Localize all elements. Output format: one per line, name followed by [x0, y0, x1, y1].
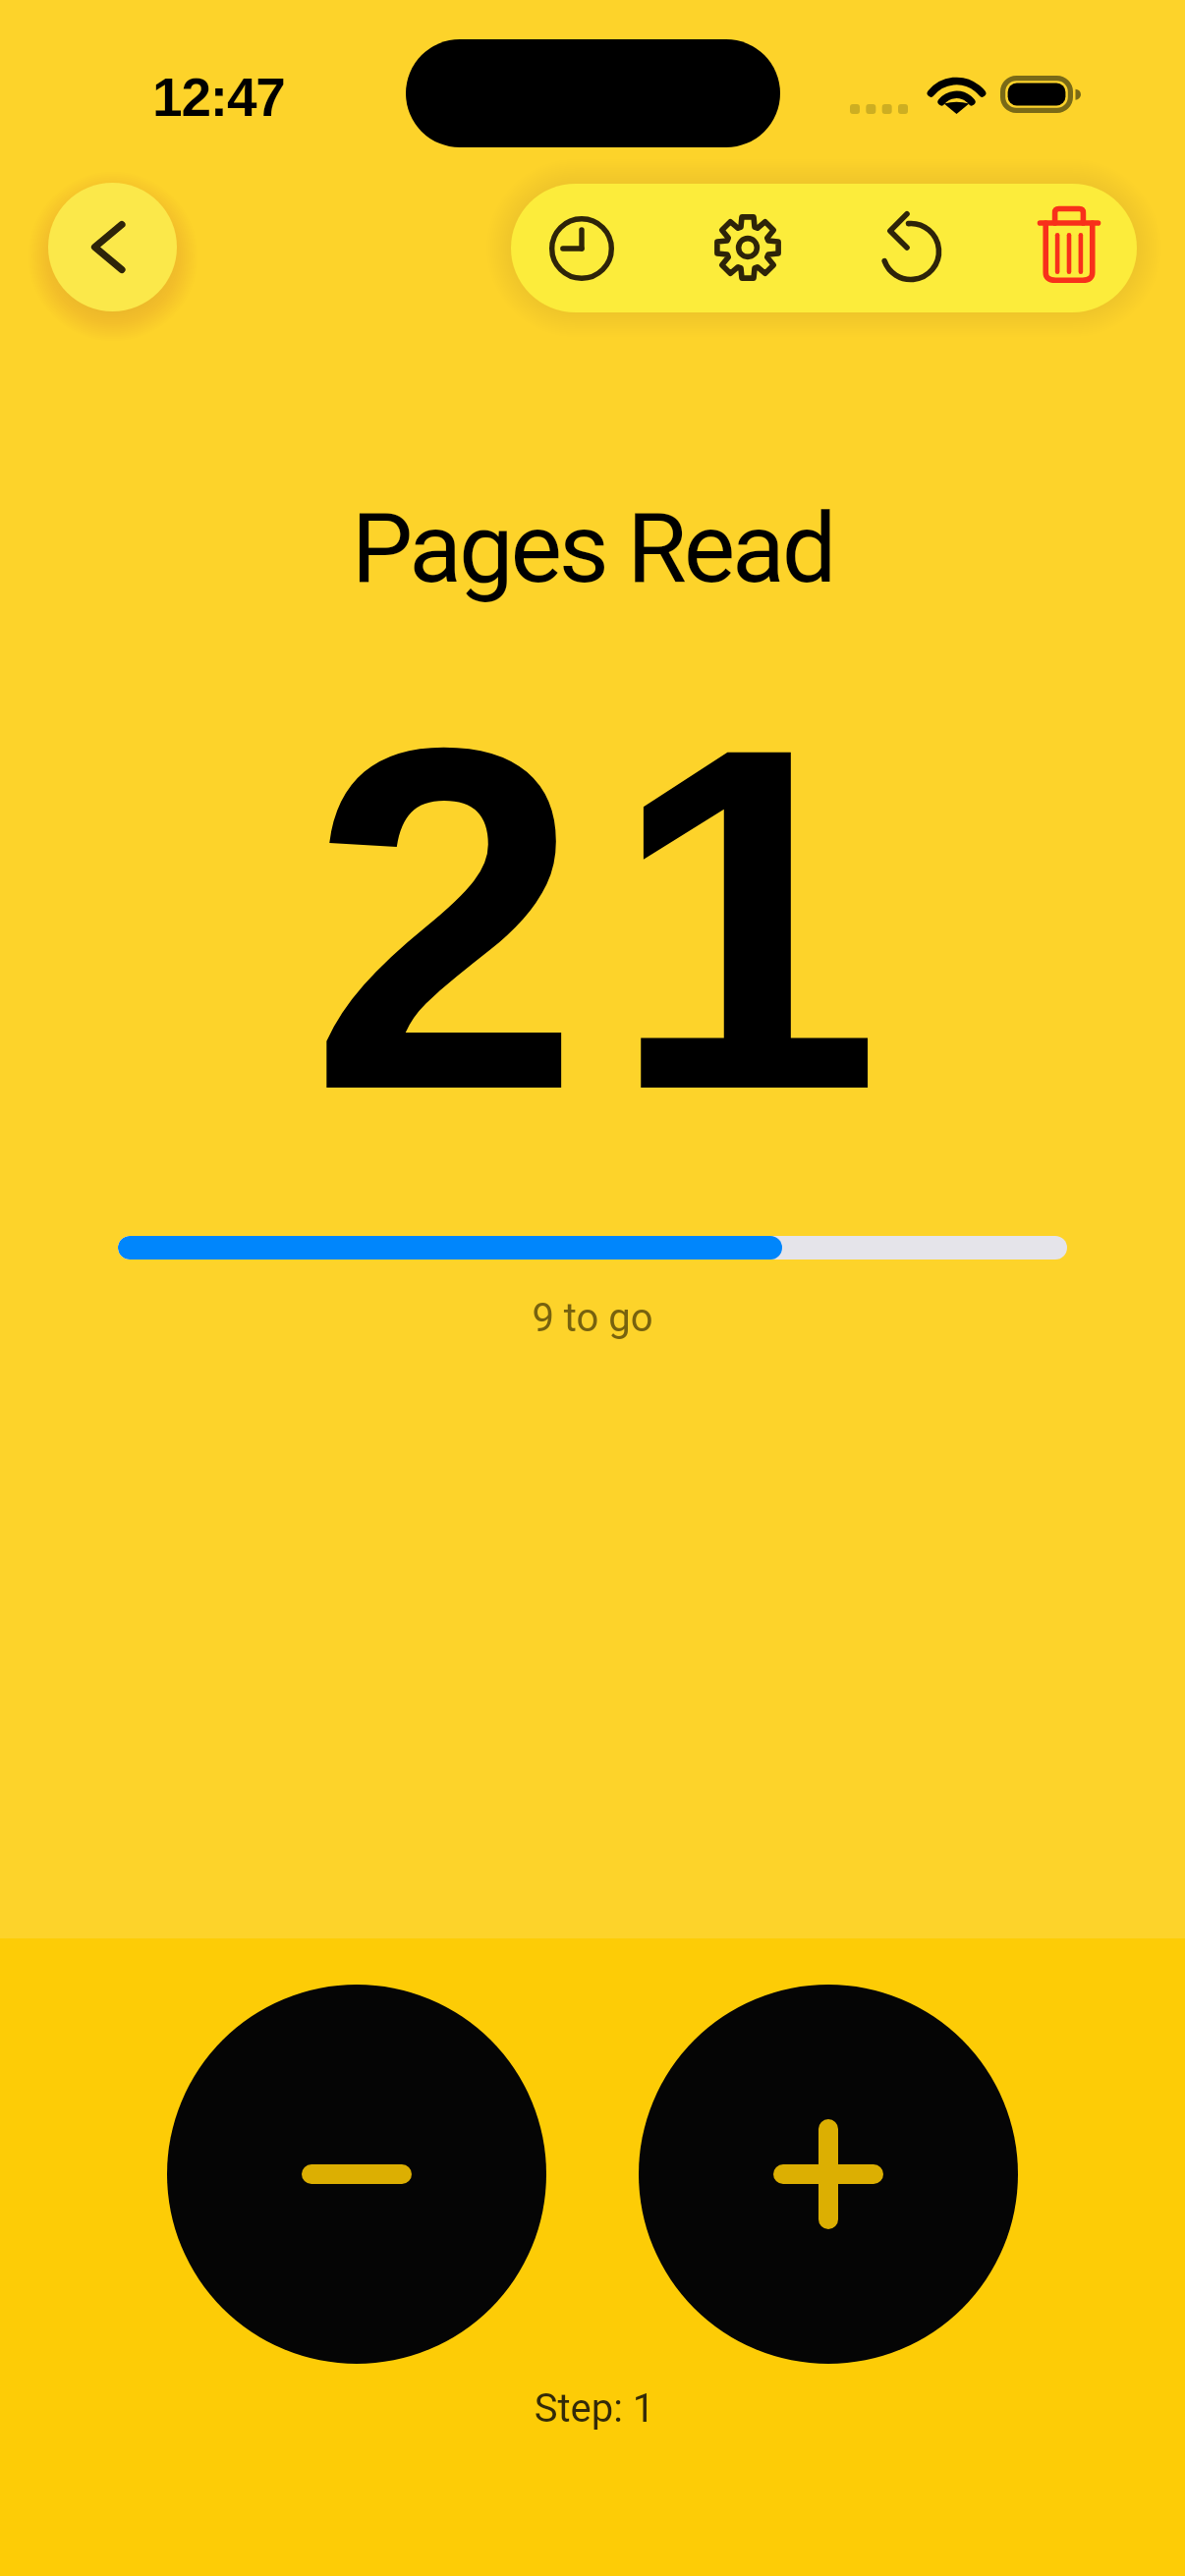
- button[interactable]: Delete: [1006, 185, 1132, 310]
- staticText: 9 to go: [0, 1295, 1185, 1341]
- button[interactable]: Decrement: [167, 1985, 546, 2364]
- staticText: Step: 1: [2, 2385, 1185, 2432]
- button[interactable]: History: [519, 186, 645, 311]
- button[interactable]: Undo: [848, 185, 974, 310]
- staticText: 21: [18, 646, 1185, 1191]
- button[interactable]: Settings: [685, 185, 811, 310]
- staticText: Pages Read: [0, 491, 1185, 605]
- button[interactable]: Increment: [639, 1985, 1018, 2364]
- button[interactable]: Back: [48, 183, 177, 311]
- staticText: 12:47: [152, 67, 285, 127]
